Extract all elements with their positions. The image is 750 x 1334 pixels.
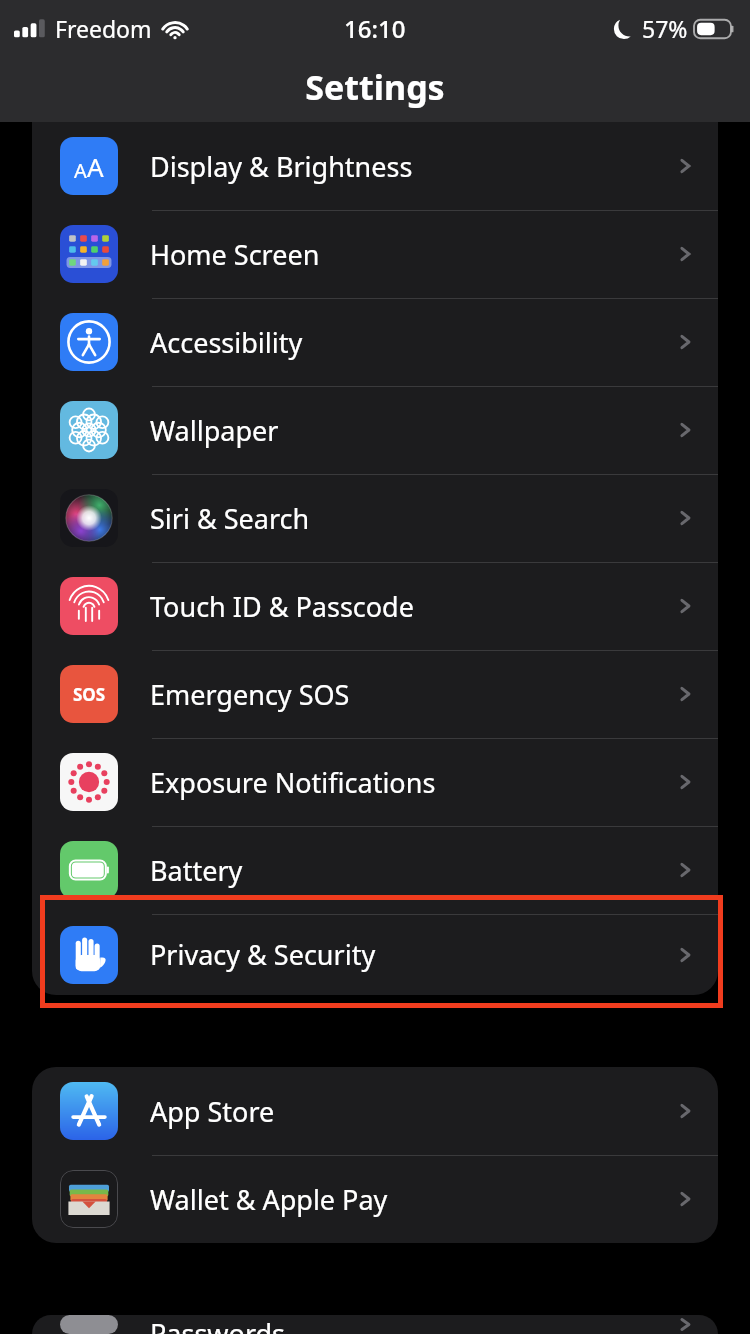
button[interactable]: Wallet & Apple Pay (32, 1155, 718, 1243)
staticText: A (74, 157, 87, 184)
button[interactable]: Siri & Search (32, 474, 718, 562)
button[interactable]: A (32, 122, 718, 210)
staticText: Passwords (150, 1315, 286, 1334)
staticText: Wallet & Apple Pay (150, 1181, 388, 1218)
button[interactable]: Passwords (32, 1315, 718, 1334)
staticText: Home Screen (150, 236, 320, 273)
staticText: Freedom (55, 13, 152, 44)
staticText: A (87, 149, 104, 184)
button[interactable]: Touch ID & Passcode (32, 562, 718, 650)
button[interactable]: Home Screen (32, 210, 718, 298)
staticText: Exposure Notifications (150, 764, 436, 801)
staticText: Accessibility (150, 324, 303, 361)
button[interactable]: Wallpaper (32, 386, 718, 474)
staticText: Wallpaper (150, 412, 279, 449)
staticText: App Store (150, 1093, 275, 1130)
button[interactable]: Battery (32, 826, 718, 914)
staticText: Privacy & Security (150, 936, 376, 973)
staticText: Touch ID & Passcode (150, 588, 414, 625)
staticText: SOS (73, 683, 106, 706)
staticText: Settings (305, 64, 445, 110)
button[interactable]: Exposure Notifications (32, 738, 718, 826)
staticText: Emergency SOS (150, 676, 350, 713)
staticText: Battery (150, 852, 243, 889)
staticText: 16:10 (344, 12, 406, 45)
staticText: Siri & Search (150, 500, 310, 537)
button[interactable]: Accessibility (32, 298, 718, 386)
staticText: 57% (642, 13, 688, 44)
button[interactable]: Privacy & Security (32, 914, 718, 995)
button[interactable]: SOS (32, 650, 718, 738)
button[interactable]: App Store (32, 1067, 718, 1155)
staticText: Display & Brightness (150, 148, 413, 185)
